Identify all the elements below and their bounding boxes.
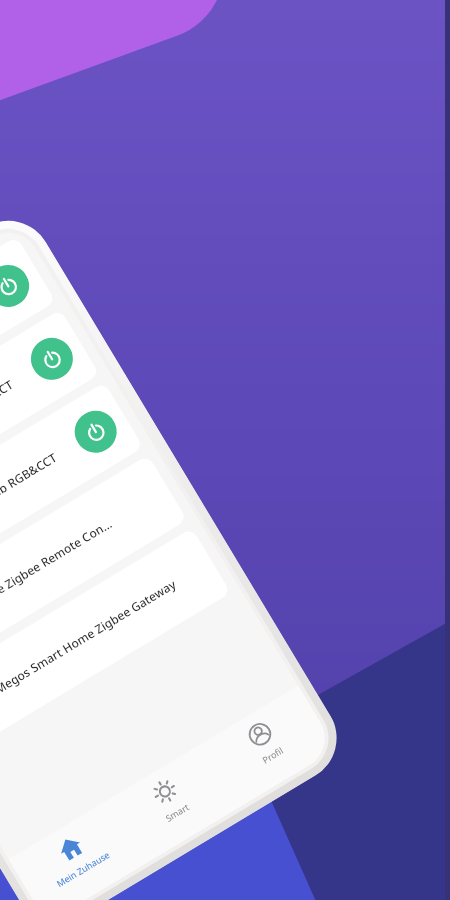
button[interactable]: Megos Smart Home Zigbee Gateway: [0, 528, 231, 757]
staticText: Megos Smart Home Zigbee Gateway: [0, 560, 205, 697]
button[interactable]: Smart: [114, 754, 236, 863]
button[interactable]: Power toggle: [23, 330, 81, 388]
button[interactable]: Megos Smart Home LED Bulb RGB&CCT: [0, 382, 143, 611]
button[interactable]: Megos Smart Home LED Bulb RGB&CCT: [0, 309, 100, 538]
staticText: Mein Zuhause: [54, 848, 112, 889]
other: Smart: [148, 775, 181, 808]
staticText: Profil: [260, 743, 286, 766]
button[interactable]: Power toggle: [0, 257, 37, 315]
button[interactable]: Mein Zuhause: [20, 811, 142, 900]
staticText: Megos Smart Home LED Bulb RGB&CCT: [0, 440, 75, 579]
staticText: Smart: [163, 800, 191, 824]
button[interactable]: Profil: [209, 697, 331, 806]
button[interactable]: Power toggle: [67, 403, 124, 460]
button[interactable]: Megos Smart Home Zigbee Remote Con…: [0, 455, 187, 684]
staticText: Megos Smart Home LED Bulb RGB&CCT: [0, 367, 31, 506]
button[interactable]: Megos Smart Home LED Bulb RGB&CCT: [0, 236, 56, 465]
other: Profil: [243, 718, 276, 751]
staticText: Megos Smart Home Zigbee Remote Con…: [0, 487, 161, 652]
other: Mein Zuhause: [54, 832, 87, 864]
